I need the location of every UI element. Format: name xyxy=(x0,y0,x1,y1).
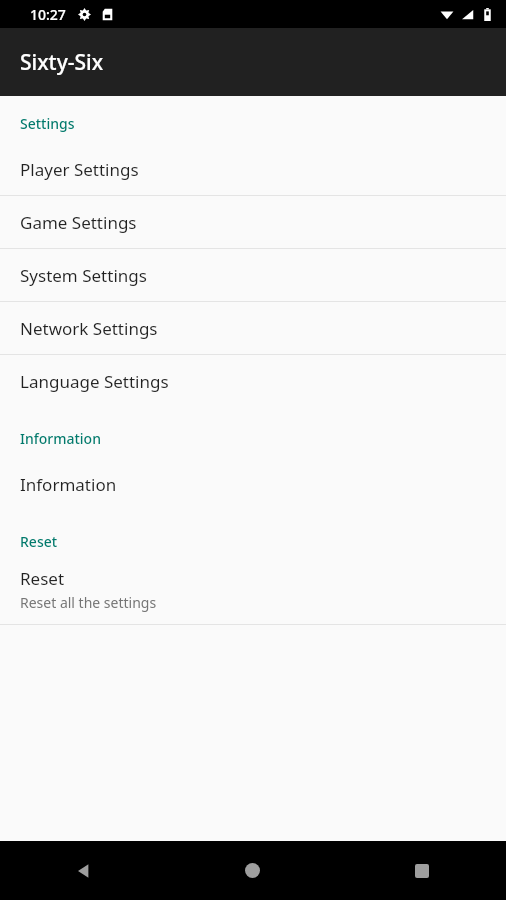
staticText: Information xyxy=(20,473,117,496)
staticText: 10:27 xyxy=(30,5,66,24)
button[interactable]: Reset xyxy=(0,559,506,624)
staticText: Network Settings xyxy=(20,317,158,340)
staticText: Reset all the settings xyxy=(20,593,157,612)
button[interactable]: System Settings xyxy=(0,249,506,301)
button[interactable]: Back xyxy=(0,841,168,900)
button[interactable]: Information xyxy=(0,458,506,510)
button[interactable]: Recent apps xyxy=(337,841,506,900)
button[interactable]: Network Settings xyxy=(0,302,506,354)
staticText: Sixty-Six xyxy=(20,48,104,77)
staticText: Settings xyxy=(20,114,75,133)
button[interactable]: Player Settings xyxy=(0,143,506,195)
staticText: Information xyxy=(20,429,101,448)
staticText: Game Settings xyxy=(20,211,137,234)
staticText: Language Settings xyxy=(20,370,169,393)
staticText: Player Settings xyxy=(20,158,139,181)
staticText: Reset xyxy=(20,567,65,590)
staticText: System Settings xyxy=(20,264,147,287)
button[interactable]: Game Settings xyxy=(0,196,506,248)
button[interactable]: Language Settings xyxy=(0,355,506,407)
button[interactable]: Home xyxy=(168,841,337,900)
staticText: Reset xyxy=(20,532,58,551)
